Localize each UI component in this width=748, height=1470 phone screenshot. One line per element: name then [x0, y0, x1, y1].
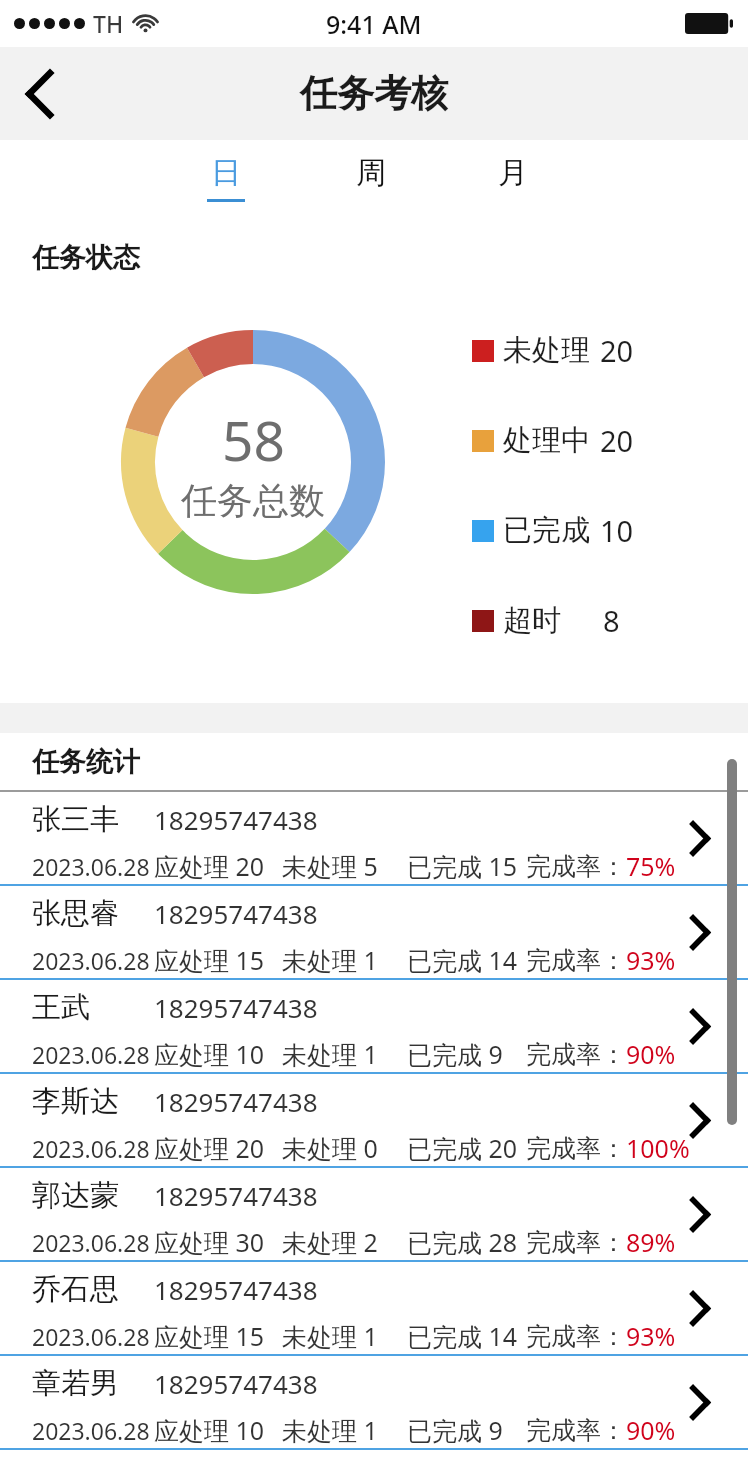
other: Details: [693, 1388, 710, 1417]
staticText: 已完成 9: [407, 1037, 503, 1071]
staticText: 未处理 1: [282, 1037, 378, 1071]
button[interactable]: 张三丰: [0, 792, 748, 884]
staticText: 89%: [626, 1225, 676, 1259]
staticText: TH: [93, 8, 124, 39]
staticText: 10: [600, 511, 634, 550]
staticText: 18295747438: [154, 1366, 318, 1401]
staticText: 完成率：: [526, 945, 626, 976]
button[interactable]: 处理中: [472, 421, 634, 460]
staticText: 应处理 15: [154, 1319, 265, 1353]
staticText: 已完成 14: [407, 943, 518, 977]
staticText: 完成率：: [526, 1415, 626, 1446]
staticText: 未处理 1: [282, 943, 378, 977]
staticText: 月: [498, 154, 528, 192]
staticText: 未处理 0: [282, 1131, 378, 1165]
other: Details: [693, 1106, 710, 1135]
staticText: 2023.06.28: [32, 1227, 150, 1258]
staticText: 已完成 14: [407, 1319, 518, 1353]
staticText: 93%: [626, 1319, 676, 1353]
button[interactable]: 李斯达: [0, 1074, 748, 1166]
button[interactable]: 郭达蒙: [0, 1168, 748, 1260]
staticText: 已完成 20: [407, 1131, 518, 1165]
staticText: 20: [600, 331, 634, 370]
staticText: 张三丰: [32, 801, 119, 838]
staticText: 完成率：: [526, 1133, 626, 1164]
button[interactable]: 已完成: [472, 511, 634, 550]
staticText: 日: [211, 154, 241, 192]
staticText: 完成率：: [526, 1321, 626, 1352]
staticText: 90%: [626, 1037, 676, 1071]
staticText: 9:41 AM: [326, 7, 422, 41]
staticText: 郭达蒙: [32, 1177, 119, 1214]
button[interactable]: 未处理: [472, 331, 634, 370]
staticText: 应处理 20: [154, 1131, 265, 1165]
staticText: 58: [222, 402, 285, 477]
staticText: 未处理 2: [282, 1225, 378, 1259]
staticText: 已完成 9: [407, 1413, 503, 1447]
other: Details: [693, 918, 710, 947]
staticText: 任务统计: [32, 745, 140, 779]
other: Details: [693, 1294, 710, 1323]
staticText: 75%: [626, 849, 676, 883]
staticText: 王武: [32, 989, 90, 1026]
staticText: 完成率：: [526, 1227, 626, 1258]
staticText: 处理中: [503, 422, 590, 459]
staticText: 2023.06.28: [32, 851, 150, 882]
staticText: 18295747438: [154, 802, 318, 837]
staticText: 未处理: [503, 332, 590, 369]
staticText: 未处理 1: [282, 1319, 378, 1353]
staticText: 章若男: [32, 1365, 119, 1402]
button[interactable]: 月: [483, 140, 543, 224]
button[interactable]: 周: [341, 140, 401, 224]
staticText: 18295747438: [154, 896, 318, 931]
button[interactable]: 日: [196, 140, 256, 224]
staticText: 2023.06.28: [32, 945, 150, 976]
staticText: 20: [600, 421, 634, 460]
staticText: 18295747438: [154, 990, 318, 1025]
staticText: 未处理 5: [282, 849, 378, 883]
other: Details: [693, 1200, 710, 1229]
staticText: 乔石思: [32, 1271, 119, 1308]
staticText: 8: [603, 601, 620, 640]
button[interactable]: 张思睿: [0, 886, 748, 978]
staticText: 完成率：: [526, 851, 626, 882]
button[interactable]: 超时: [472, 601, 620, 640]
staticText: 任务状态: [32, 241, 140, 275]
staticText: 周: [356, 154, 386, 192]
staticText: 超时: [503, 602, 561, 639]
button[interactable]: Back: [0, 56, 76, 132]
staticText: 90%: [626, 1413, 676, 1447]
staticText: 任务考核: [300, 70, 448, 117]
staticText: 应处理 15: [154, 943, 265, 977]
button[interactable]: 王武: [0, 980, 748, 1072]
staticText: 已完成 28: [407, 1225, 518, 1259]
staticText: 2023.06.28: [32, 1415, 150, 1446]
staticText: 应处理 30: [154, 1225, 265, 1259]
staticText: 18295747438: [154, 1084, 318, 1119]
button[interactable]: 乔石思: [0, 1262, 748, 1354]
staticText: 完成率：: [526, 1039, 626, 1070]
staticText: 已完成: [503, 512, 590, 549]
staticText: 任务总数: [181, 478, 325, 523]
staticText: 100%: [626, 1131, 690, 1165]
other: Details: [693, 824, 710, 853]
other: Details: [693, 1012, 710, 1041]
staticText: 张思睿: [32, 895, 119, 932]
staticText: 18295747438: [154, 1178, 318, 1213]
staticText: 2023.06.28: [32, 1039, 150, 1070]
staticText: 93%: [626, 943, 676, 977]
staticText: 李斯达: [32, 1083, 119, 1120]
staticText: 未处理 1: [282, 1413, 378, 1447]
staticText: 2023.06.28: [32, 1133, 150, 1164]
staticText: 应处理 20: [154, 849, 265, 883]
button[interactable]: 章若男: [0, 1356, 748, 1448]
staticText: 2023.06.28: [32, 1321, 150, 1352]
staticText: 应处理 10: [154, 1037, 265, 1071]
staticText: 已完成 15: [407, 849, 518, 883]
staticText: 应处理 10: [154, 1413, 265, 1447]
staticText: 18295747438: [154, 1272, 318, 1307]
